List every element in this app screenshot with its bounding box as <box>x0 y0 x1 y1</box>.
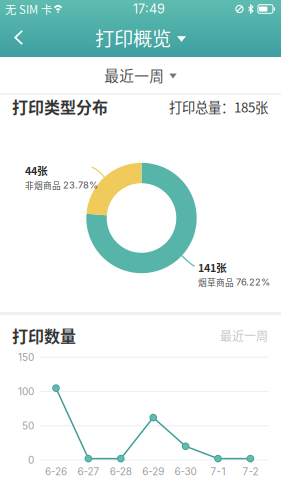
staticText: 23.78% <box>63 180 98 191</box>
button[interactable]: Back <box>0 19 39 56</box>
staticText: 打印概览 <box>95 23 171 51</box>
staticText: 7-2 <box>242 465 258 478</box>
staticText: 100 <box>18 385 34 398</box>
button[interactable]: 最近一周 <box>90 55 191 95</box>
button[interactable]: 打印概览 <box>83 15 198 59</box>
staticText: 6-27 <box>77 465 99 478</box>
staticText: 76.22% <box>236 277 270 288</box>
staticText: 6-30 <box>175 465 197 478</box>
staticText: 0 <box>28 454 34 466</box>
staticText: 50 <box>22 420 34 432</box>
staticText: 非烟商品 <box>25 179 61 191</box>
staticText: 最近一周 <box>104 64 164 86</box>
staticText: 17:49 <box>133 1 165 17</box>
staticText: 7-1 <box>210 465 225 478</box>
staticText: 141张 <box>198 259 227 275</box>
staticText: 150 <box>18 351 34 363</box>
staticText: 打印类型分布 <box>12 95 108 118</box>
staticText: 6-29 <box>142 465 164 478</box>
staticText: 打印总量：185张 <box>169 97 268 116</box>
staticText: 最近一周 <box>220 327 268 344</box>
staticText: 无 SIM 卡 <box>5 1 52 17</box>
staticText: 烟草商品 <box>198 276 234 288</box>
staticText: 打印数量 <box>12 324 76 347</box>
staticText: 6-28 <box>110 465 132 478</box>
staticText: 6-26 <box>45 465 67 478</box>
staticText: 44张 <box>25 162 48 178</box>
